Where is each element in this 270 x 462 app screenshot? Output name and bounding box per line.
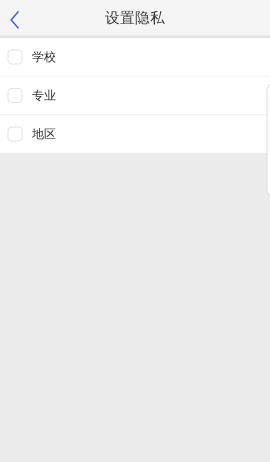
button[interactable]: 学校 — [0, 38, 270, 76]
staticText: 设置隐私 — [105, 9, 165, 27]
button[interactable]: 专业 — [0, 77, 270, 114]
staticText: 地区 — [32, 127, 56, 141]
staticText: 专业 — [32, 88, 56, 103]
staticText: 学校 — [32, 50, 56, 64]
button[interactable]: Back — [0, 1, 36, 35]
button[interactable]: 地区 — [0, 115, 270, 153]
